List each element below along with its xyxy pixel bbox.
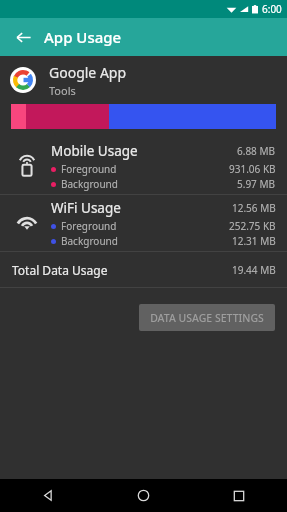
staticText: 19.44 MB [232,263,276,277]
staticText: DATA USAGE SETTINGS [150,311,264,325]
staticText: Background [61,177,237,191]
staticText: WiFi Usage [51,199,232,217]
staticText: Foreground [61,219,229,233]
staticText: Total Data Usage [12,262,232,278]
button[interactable]: Mobile Usage [0,138,287,194]
staticText: Mobile Usage [51,142,237,160]
button[interactable]: Total Data Usage [0,252,287,287]
button[interactable]: Back [0,479,95,512]
button[interactable]: WiFi Usage [0,195,287,251]
staticText: Background [61,234,232,248]
button[interactable]: Google App [0,56,287,104]
button[interactable]: Recent apps [191,479,287,512]
button[interactable]: DATA USAGE SETTINGS [139,304,275,331]
staticText: 931.06 KB [229,162,276,176]
staticText: 12.56 MB [232,201,276,215]
staticText: Google App [49,63,127,82]
staticText: App Usage [44,27,122,47]
button[interactable]: Back [8,22,38,52]
staticText: 6.88 MB [237,144,276,158]
staticText: 252.75 KB [229,219,276,233]
staticText: 12.31 MB [232,234,276,248]
staticText: 6:00 [262,2,282,16]
staticText: 5.97 MB [237,177,276,191]
staticText: Foreground [61,162,229,176]
button[interactable]: Home [95,479,191,512]
staticText: Tools [49,83,76,98]
